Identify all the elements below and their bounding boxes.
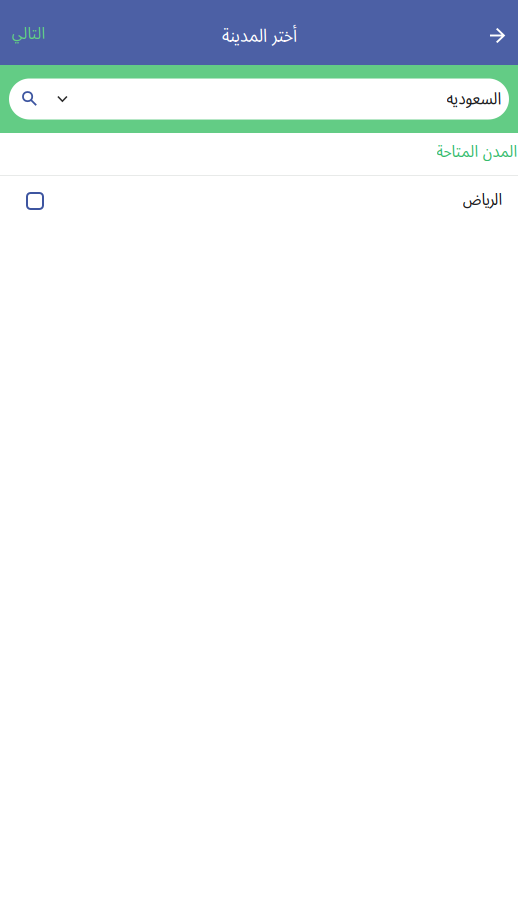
staticText: المدن المتاحة	[436, 139, 517, 162]
staticText: التالي	[11, 21, 45, 44]
staticText: الرياض	[462, 187, 502, 210]
button[interactable]: Back	[476, 11, 518, 53]
button[interactable]: السعوديه	[9, 78, 509, 119]
button[interactable]: الرياض	[0, 176, 518, 226]
staticText: أختر المدينة	[221, 22, 296, 47]
staticText: السعوديه	[446, 86, 501, 109]
button[interactable]: التالي	[0, 11, 56, 54]
